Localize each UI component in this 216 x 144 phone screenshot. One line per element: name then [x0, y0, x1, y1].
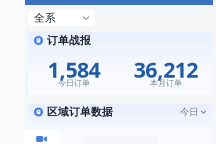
staticText: 今日订单 — [58, 78, 90, 88]
staticText: 1 — [175, 55, 187, 84]
staticText: 8 — [77, 55, 89, 84]
staticText: 6 — [145, 55, 157, 84]
staticText: 全系 — [34, 11, 56, 24]
staticText: 今日 — [180, 106, 198, 118]
button[interactable]: Video — [23, 130, 60, 144]
staticText: , — [59, 55, 65, 84]
staticText: 1 — [47, 55, 59, 84]
staticText: 订单战报 — [47, 34, 91, 47]
staticText: 本月订单 — [150, 78, 182, 88]
staticText: 区域订单数据 — [47, 105, 113, 118]
staticText: 3 — [134, 55, 146, 84]
staticText: 2 — [186, 55, 198, 84]
staticText: , — [157, 55, 163, 84]
staticText: 4 — [88, 55, 100, 84]
staticText: 2 — [163, 55, 175, 84]
button[interactable]: 今日 — [180, 106, 206, 118]
button[interactable]: 全系 — [28, 10, 95, 26]
staticText: 5 — [65, 55, 77, 84]
